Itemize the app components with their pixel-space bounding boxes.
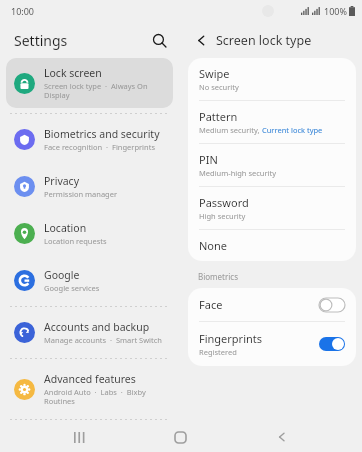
button[interactable]: Back: [260, 422, 304, 452]
staticText: Fingerprints: [199, 331, 263, 346]
button[interactable]: Off: [319, 298, 345, 312]
staticText: Pattern: [199, 109, 238, 124]
staticText: Face: [199, 297, 223, 312]
staticText: PIN: [199, 152, 218, 167]
staticText: Current lock type: [262, 125, 323, 135]
button[interactable]: Lock screen: [6, 58, 173, 108]
staticText: Privacy: [44, 174, 80, 188]
staticText: Location requests: [44, 236, 107, 246]
staticText: No security: [199, 82, 239, 92]
staticText: High security: [199, 211, 246, 221]
button[interactable]: Face: [188, 288, 356, 321]
staticText: Face recognition · Fingerprints: [44, 142, 155, 152]
staticText: Biometrics and security: [44, 127, 160, 141]
button[interactable]: Location: [6, 213, 173, 254]
button[interactable]: Google: [6, 260, 173, 301]
button[interactable]: Privacy: [6, 166, 173, 207]
staticText: Manage accounts · Smart Switch: [44, 335, 162, 345]
button[interactable]: None: [188, 230, 356, 261]
staticText: Medium-high security: [199, 168, 277, 178]
staticText: Accounts and backup: [44, 320, 150, 334]
staticText: 100%: [324, 5, 347, 17]
staticText: Google services: [44, 283, 100, 293]
staticText: Registered: [199, 347, 237, 357]
button[interactable]: PIN: [188, 144, 356, 186]
button[interactable]: Pattern: [188, 101, 356, 143]
button[interactable]: Search: [145, 26, 173, 54]
staticText: None: [199, 238, 228, 253]
staticText: Swipe: [199, 66, 230, 81]
button[interactable]: Fingerprints: [188, 322, 356, 366]
staticText: Advanced features: [44, 372, 136, 386]
staticText: Permission manager: [44, 189, 118, 199]
staticText: Settings: [14, 31, 68, 50]
button[interactable]: Biometrics and security: [6, 119, 173, 160]
button[interactable]: Swipe: [188, 58, 356, 100]
button[interactable]: Accounts and backup: [6, 312, 173, 353]
button[interactable]: Recents: [57, 422, 101, 452]
button[interactable]: Home: [158, 422, 202, 452]
staticText: Password: [199, 195, 249, 210]
staticText: Biometrics: [198, 271, 239, 282]
button[interactable]: Password: [188, 187, 356, 229]
button[interactable]: On: [319, 337, 345, 351]
staticText: Screen lock type · Always On Display: [44, 81, 165, 100]
staticText: Google: [44, 268, 80, 282]
button[interactable]: Advanced features: [6, 364, 173, 414]
staticText: Screen lock type: [216, 32, 312, 49]
staticText: Android Auto · Labs · Bixby Routines: [44, 387, 165, 406]
staticText: Location: [44, 221, 87, 235]
staticText: Medium security,: [199, 125, 262, 135]
button[interactable]: Back: [188, 27, 214, 53]
staticText: Lock screen: [44, 66, 102, 80]
staticText: 10:00: [11, 5, 35, 17]
